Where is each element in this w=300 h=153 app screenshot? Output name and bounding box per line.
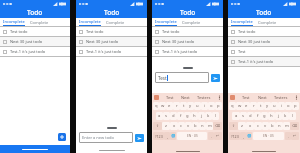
button[interactable]: f	[254, 112, 261, 120]
button[interactable]: r	[250, 102, 257, 110]
button[interactable]: Testers	[197, 95, 211, 100]
button[interactable]: Test	[166, 95, 174, 100]
button[interactable]: s	[163, 112, 170, 120]
button[interactable]: l	[289, 112, 296, 120]
button[interactable]: w	[159, 102, 166, 110]
button[interactable]: Complete	[106, 20, 125, 25]
button[interactable]: a	[232, 112, 240, 120]
button[interactable]: ⇧	[229, 122, 238, 130]
button[interactable]: n	[276, 122, 283, 130]
button[interactable]: x	[246, 122, 254, 130]
button[interactable]: q	[229, 102, 236, 110]
button[interactable]: r	[173, 102, 180, 110]
button[interactable]: u	[194, 102, 201, 110]
button[interactable]: Toggle Test-1 it's just todo	[0, 47, 70, 56]
button[interactable]: Complete	[182, 20, 201, 25]
button[interactable]: 🌐	[170, 132, 176, 140]
button[interactable]: h	[268, 112, 275, 120]
button[interactable]: ?123	[153, 132, 164, 140]
button[interactable]: u	[271, 102, 278, 110]
button[interactable]: Toggle Test-1 it's just todo	[76, 47, 147, 56]
button[interactable]: Next	[181, 95, 190, 100]
button[interactable]: Toggle Test-1 it's just todo	[152, 47, 223, 56]
button[interactable]: Next	[258, 95, 267, 100]
button[interactable]: Toggle Test todo	[152, 27, 223, 36]
button[interactable]: ⌫	[213, 122, 222, 130]
button[interactable]: Complete	[30, 20, 49, 25]
button[interactable]: b	[192, 122, 199, 130]
button[interactable]: q	[153, 102, 159, 110]
button[interactable]: j	[198, 112, 205, 120]
button[interactable]: d	[170, 112, 177, 120]
button[interactable]: i	[201, 102, 208, 110]
button[interactable]: Test	[155, 72, 209, 83]
button[interactable]: s	[240, 112, 247, 120]
button[interactable]: Complete	[258, 20, 277, 25]
button[interactable]: Toggle Next 30 just todo	[152, 37, 223, 46]
button[interactable]: Incomplete	[3, 19, 25, 26]
button[interactable]: o	[208, 102, 215, 110]
button[interactable]: ,	[164, 132, 170, 140]
button[interactable]: j	[275, 112, 282, 120]
button[interactable]: Testers	[274, 95, 288, 100]
button[interactable]: Space	[253, 132, 284, 140]
button[interactable]: Toggle Test todo	[228, 27, 300, 36]
button[interactable]: c	[254, 122, 262, 130]
button[interactable]: Incomplete	[155, 19, 177, 26]
button[interactable]: t	[180, 102, 187, 110]
button[interactable]: t	[257, 102, 264, 110]
button[interactable]: x	[170, 122, 178, 130]
button[interactable]: Test	[242, 95, 250, 100]
button[interactable]: Enter a new todo	[79, 132, 133, 143]
button[interactable]: z	[162, 122, 170, 130]
button[interactable]: y	[187, 102, 194, 110]
button[interactable]: z	[238, 122, 246, 130]
button[interactable]: Toggle Next 30 just todo	[0, 37, 70, 46]
button[interactable]: ?123	[229, 132, 240, 140]
button[interactable]: Space	[177, 132, 207, 140]
button[interactable]: Toggle Test todo	[76, 27, 147, 36]
button[interactable]: e	[243, 102, 250, 110]
button[interactable]: Add todo	[58, 133, 66, 141]
button[interactable]: v	[185, 122, 192, 130]
button[interactable]: h	[191, 112, 198, 120]
button[interactable]: ↵	[291, 132, 299, 140]
button[interactable]: More	[295, 95, 298, 100]
button[interactable]: v	[262, 122, 269, 130]
button[interactable]: d	[247, 112, 254, 120]
button[interactable]: Toggle Test todo	[0, 27, 70, 36]
button[interactable]: k	[205, 112, 212, 120]
button[interactable]: c	[178, 122, 185, 130]
button[interactable]: f	[177, 112, 184, 120]
button[interactable]: g	[184, 112, 191, 120]
button[interactable]: ↵	[214, 132, 222, 140]
button[interactable]: Send	[135, 134, 144, 142]
button[interactable]: ,	[240, 132, 246, 140]
button[interactable]: a	[156, 112, 163, 120]
button[interactable]: Toggle Test	[228, 47, 300, 56]
button[interactable]: y	[264, 102, 271, 110]
button[interactable]: 🌐	[246, 132, 252, 140]
button[interactable]: i	[278, 102, 285, 110]
button[interactable]: n	[199, 122, 206, 130]
button[interactable]: l	[212, 112, 219, 120]
button[interactable]: g	[261, 112, 268, 120]
button[interactable]: More	[218, 95, 221, 100]
button[interactable]: m	[283, 122, 290, 130]
button[interactable]: k	[282, 112, 289, 120]
button[interactable]: o	[285, 102, 292, 110]
button[interactable]: p	[292, 102, 299, 110]
button[interactable]: ⇧	[153, 122, 162, 130]
button[interactable]: m	[206, 122, 213, 130]
button[interactable]: ⌫	[290, 122, 299, 130]
button[interactable]: w	[236, 102, 243, 110]
button[interactable]: Emoji	[230, 95, 235, 100]
button[interactable]: Incomplete	[231, 19, 253, 26]
button[interactable]: p	[215, 102, 222, 110]
button[interactable]: Emoji	[154, 95, 159, 100]
button[interactable]: e	[166, 102, 173, 110]
button[interactable]: Toggle Next 30 just todo	[228, 37, 300, 46]
button[interactable]: b	[269, 122, 276, 130]
